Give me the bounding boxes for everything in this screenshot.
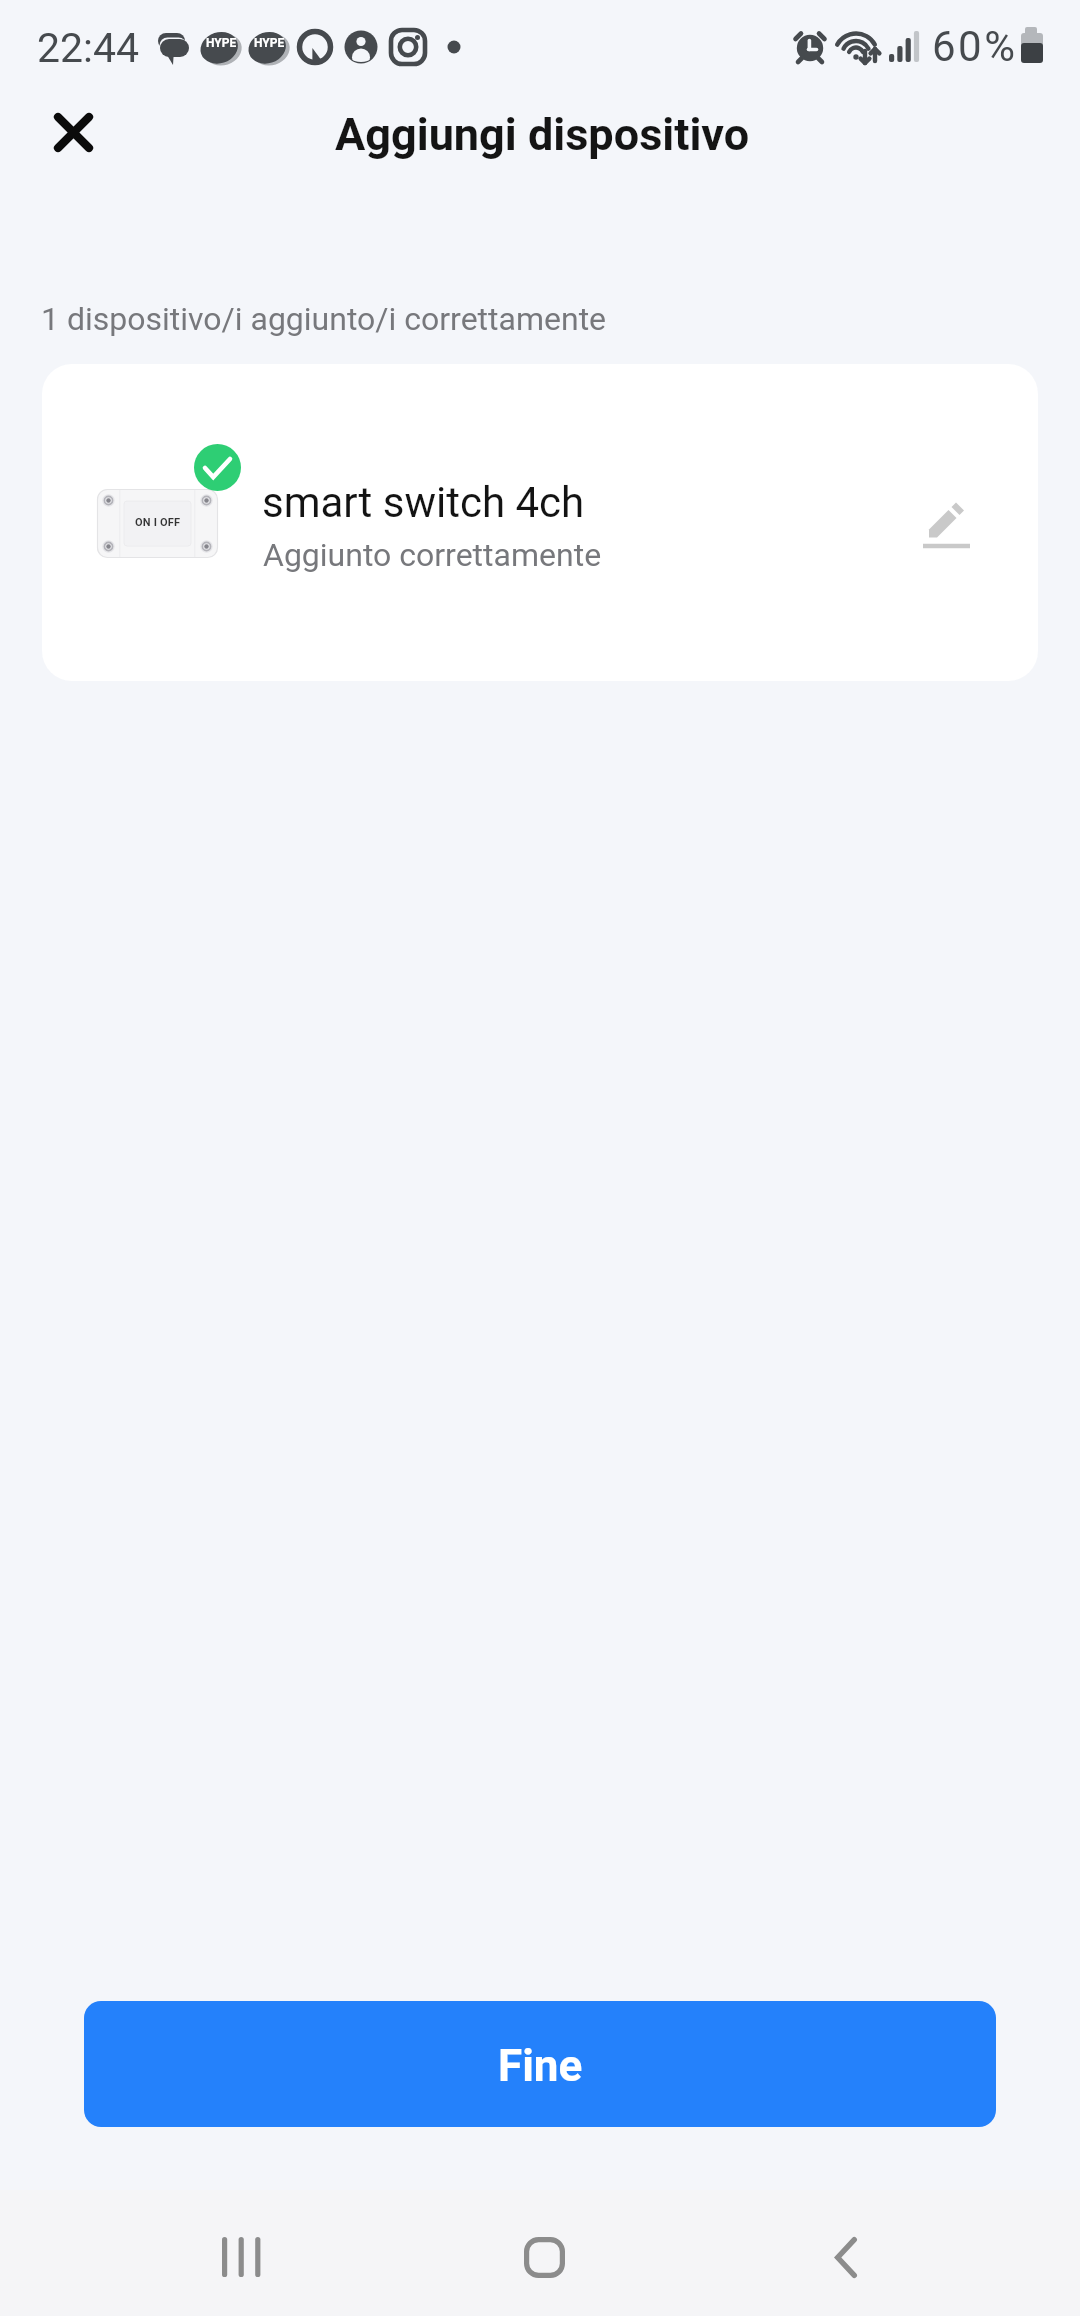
staticText: 60% <box>932 22 1018 71</box>
staticText: Fine <box>498 2040 583 2092</box>
staticText: HYPE <box>206 36 237 50</box>
button[interactable]: Close <box>28 87 118 177</box>
staticText: ON I OFF <box>135 516 181 529</box>
staticText: 1 dispositivo/i aggiunto/i correttamente <box>41 300 607 338</box>
staticText: HYPE <box>254 36 285 50</box>
button[interactable]: Edit device name <box>900 479 992 571</box>
button[interactable]: Home <box>494 2207 594 2307</box>
button[interactable]: Fine <box>84 2001 996 2127</box>
staticText: 22:44 <box>37 24 140 72</box>
staticText: Aggiunto correttamente <box>263 536 602 574</box>
button[interactable]: ON I OFF <box>42 364 1038 681</box>
staticText: smart switch 4ch <box>262 478 585 527</box>
staticText: Aggiungi dispositivo <box>335 108 750 161</box>
button[interactable]: Recent apps <box>192 2207 292 2307</box>
button[interactable]: Back <box>796 2207 896 2307</box>
